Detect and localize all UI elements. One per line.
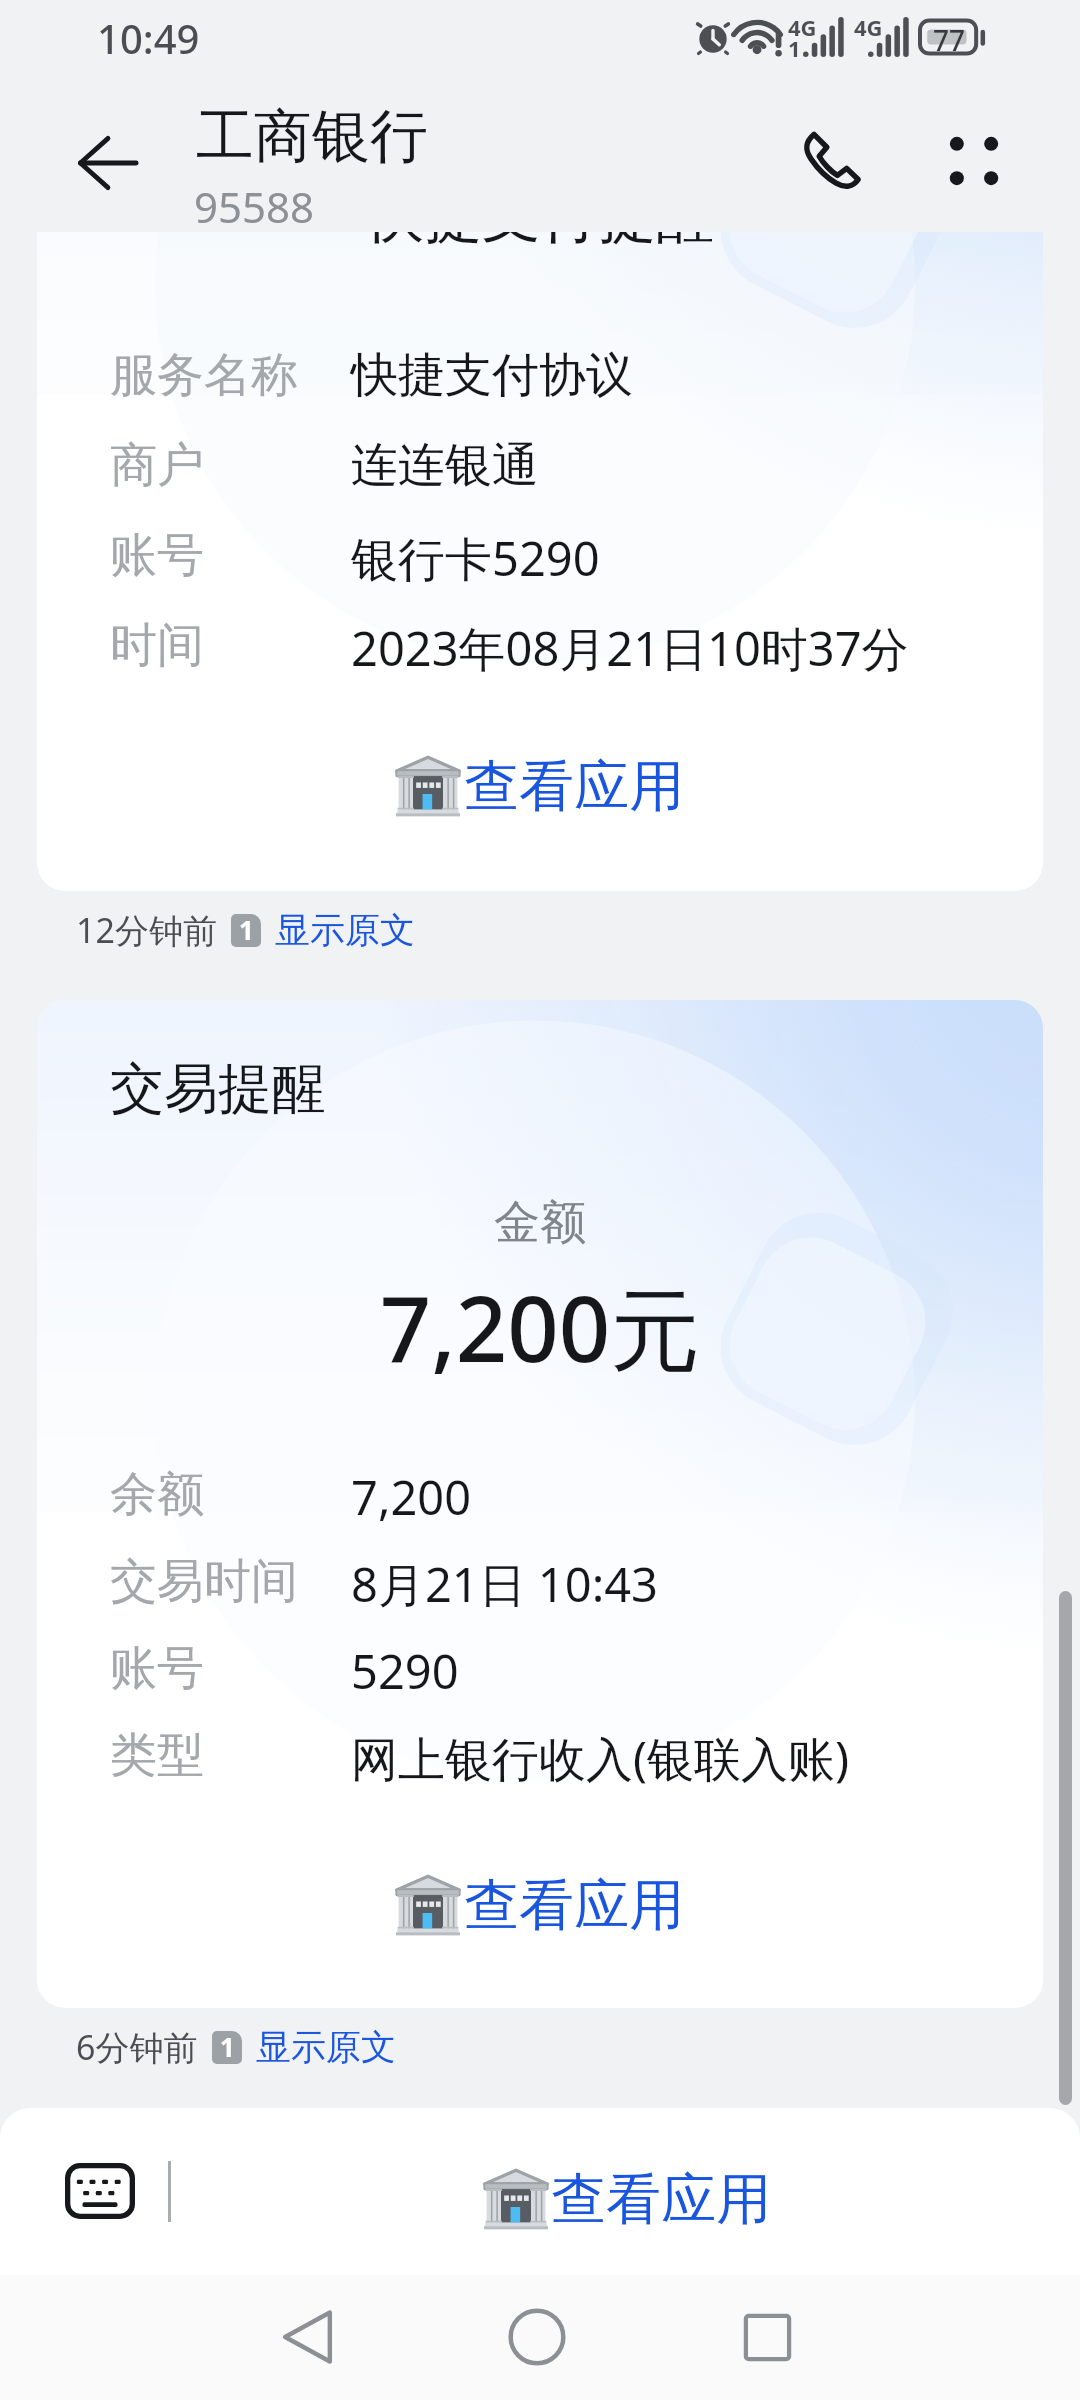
staticText: 金额: [37, 1194, 1043, 1252]
staticText: 7,200元: [37, 1266, 1043, 1389]
staticText: 余额: [110, 1465, 204, 1524]
staticText: 2023年08月21日10时37分: [351, 616, 909, 680]
staticText: 8月21日 10:43: [351, 1552, 659, 1616]
button[interactable]: 显示原文: [248, 2018, 404, 2076]
staticText: 连连银通: [351, 436, 539, 495]
staticText: 工商银行: [196, 100, 428, 173]
staticText: 账号: [110, 526, 204, 585]
staticText: 显示原文: [275, 908, 415, 952]
staticText: 1: [788, 33, 801, 63]
staticText: 时间: [110, 616, 204, 675]
staticText: 账号: [110, 1639, 204, 1698]
staticText: 5290: [351, 1639, 459, 1703]
staticText: 查看应用: [551, 2165, 771, 2234]
staticText: 类型: [110, 1726, 204, 1785]
button[interactable]: 查看应用: [484, 2159, 771, 2239]
button[interactable]: 查看应用: [37, 1866, 1043, 1944]
staticText: 6分钟前: [76, 2024, 198, 2070]
staticText: 显示原文: [256, 2025, 396, 2069]
button[interactable]: Home: [477, 2277, 597, 2397]
staticText: 查看应用: [464, 752, 684, 821]
staticText: 95588: [194, 178, 315, 235]
staticText: 4G: [854, 12, 883, 42]
staticText: 1: [220, 2031, 235, 2062]
staticText: 4G: [788, 12, 817, 42]
staticText: 网上银行收入(银联入账): [351, 1726, 850, 1790]
staticText: 12分钟前: [76, 907, 217, 953]
staticText: 快捷支付提醒: [37, 232, 1043, 253]
button[interactable]: 显示原文: [267, 901, 423, 959]
staticText: 交易提醒: [110, 1055, 326, 1123]
button[interactable]: Call: [776, 106, 886, 216]
button[interactable]: 交易提醒: [37, 1000, 1043, 2008]
staticText: 77: [933, 21, 966, 59]
button[interactable]: More options: [918, 106, 1030, 216]
staticText: 7,200: [351, 1465, 472, 1529]
staticText: 快捷支付协议: [351, 346, 633, 405]
button[interactable]: Keyboard: [50, 2148, 150, 2234]
staticText: 服务名称: [110, 346, 298, 405]
staticText: 查看应用: [464, 1871, 684, 1940]
staticText: 银行卡5290: [351, 526, 600, 590]
button[interactable]: 快捷支付提醒: [37, 232, 1043, 891]
button[interactable]: Recents: [707, 2277, 827, 2397]
staticText: 交易时间: [110, 1552, 298, 1611]
staticText: 10:49: [97, 11, 200, 65]
button[interactable]: Back: [248, 2277, 368, 2397]
button[interactable]: Back: [53, 106, 163, 220]
staticText: 商户: [110, 436, 204, 495]
staticText: 1: [239, 914, 254, 945]
button[interactable]: 查看应用: [37, 747, 1043, 825]
